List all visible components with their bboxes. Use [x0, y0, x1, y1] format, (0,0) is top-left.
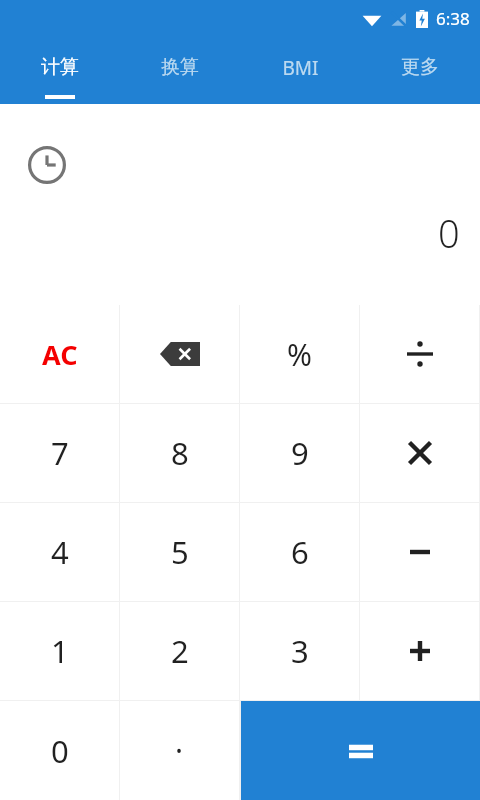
button[interactable]: · [120, 701, 239, 800]
button[interactable]: 8 [120, 404, 239, 502]
button[interactable]: 更多 [360, 36, 480, 104]
staticText: % [287, 334, 312, 375]
staticText: · [175, 730, 184, 771]
button[interactable]: Multiply [360, 404, 479, 502]
button[interactable]: 5 [120, 503, 239, 601]
other: Divide [406, 340, 434, 368]
staticText: AC [42, 336, 78, 373]
button[interactable]: 计算 [0, 36, 120, 104]
staticText: 计算 [41, 55, 79, 79]
button[interactable]: Divide [360, 305, 479, 403]
button[interactable]: 0 [0, 701, 119, 800]
button[interactable]: BMI [240, 36, 360, 104]
button[interactable]: 1 [0, 602, 119, 700]
button[interactable]: % [240, 305, 359, 403]
staticText: 2 [171, 630, 189, 672]
button[interactable]: Backspace [120, 305, 239, 403]
staticText: 3 [291, 630, 309, 672]
other: Plus [407, 638, 433, 664]
button[interactable]: 6 [240, 503, 359, 601]
staticText: 6:38 [436, 7, 470, 30]
other: Minus [407, 539, 433, 565]
button[interactable]: Equals [241, 701, 480, 800]
button[interactable]: 4 [0, 503, 119, 601]
staticText: 7 [51, 432, 69, 474]
other: Multiply [407, 440, 433, 466]
button[interactable]: Plus [360, 602, 479, 700]
button[interactable]: Minus [360, 503, 479, 601]
staticText: 9 [291, 432, 309, 474]
button[interactable]: 换算 [120, 36, 240, 104]
staticText: BMI [282, 55, 319, 81]
staticText: 0 [51, 730, 69, 772]
button[interactable]: History [22, 140, 72, 190]
staticText: 换算 [161, 55, 199, 79]
button[interactable]: 9 [240, 404, 359, 502]
staticText: 1 [51, 630, 69, 672]
staticText: 更多 [401, 55, 439, 79]
button[interactable]: 2 [120, 602, 239, 700]
staticText: 0 [438, 207, 460, 259]
staticText: 8 [171, 432, 189, 474]
button[interactable]: AC [0, 305, 119, 403]
button[interactable]: 3 [240, 602, 359, 700]
other: Backspace [160, 342, 200, 366]
staticText: 4 [51, 531, 69, 573]
staticText: 6 [291, 531, 309, 573]
button[interactable]: 7 [0, 404, 119, 502]
staticText: 5 [171, 531, 189, 573]
